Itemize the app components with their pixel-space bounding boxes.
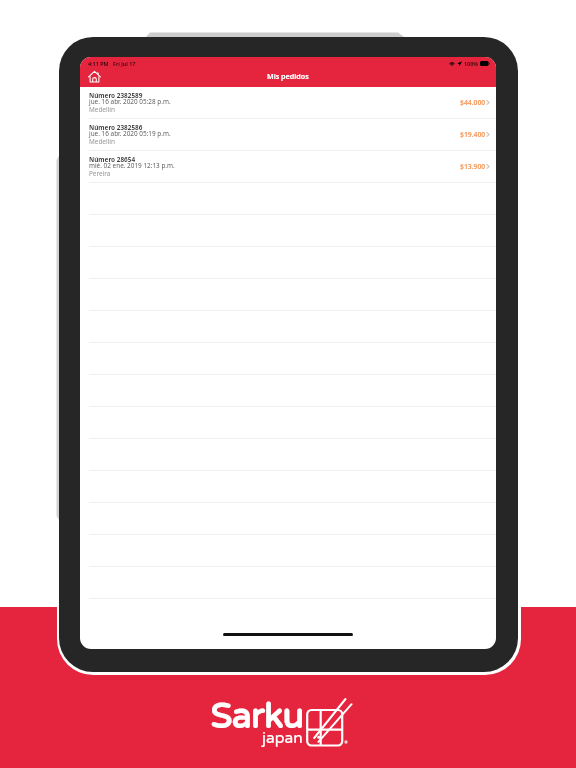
staticText: Número 2382586 (89, 123, 143, 132)
button[interactable]: Número 2382589 (80, 87, 496, 119)
staticText: Medellín (89, 105, 115, 114)
staticText: 4:11 PM (88, 60, 109, 67)
staticText: Sarku (210, 696, 304, 738)
staticText: Medellín (89, 137, 115, 146)
staticText: 100% (464, 60, 478, 67)
staticText: $44.000 (460, 98, 486, 107)
staticText: $19.400 (460, 130, 486, 139)
staticText: jue. 16 abr. 2020 05:28 p.m. (89, 97, 171, 106)
staticText: Fri Jul 17 (113, 60, 136, 67)
staticText: mié. 02 ene. 2019 12:13 p.m. (89, 161, 175, 170)
staticText: Número 28654 (89, 155, 136, 164)
staticText: Mis pedidos (267, 71, 309, 81)
staticText: japan (262, 729, 303, 748)
staticText: Pereira (89, 169, 111, 178)
staticText: jue. 16 abr. 2020 05:19 p.m. (89, 129, 171, 138)
button[interactable]: Número 28654 (80, 151, 496, 183)
staticText: $13.900 (460, 162, 486, 171)
staticText: Número 2382589 (89, 91, 143, 100)
button[interactable]: Número 2382586 (80, 119, 496, 151)
button[interactable]: Home (88, 70, 101, 83)
